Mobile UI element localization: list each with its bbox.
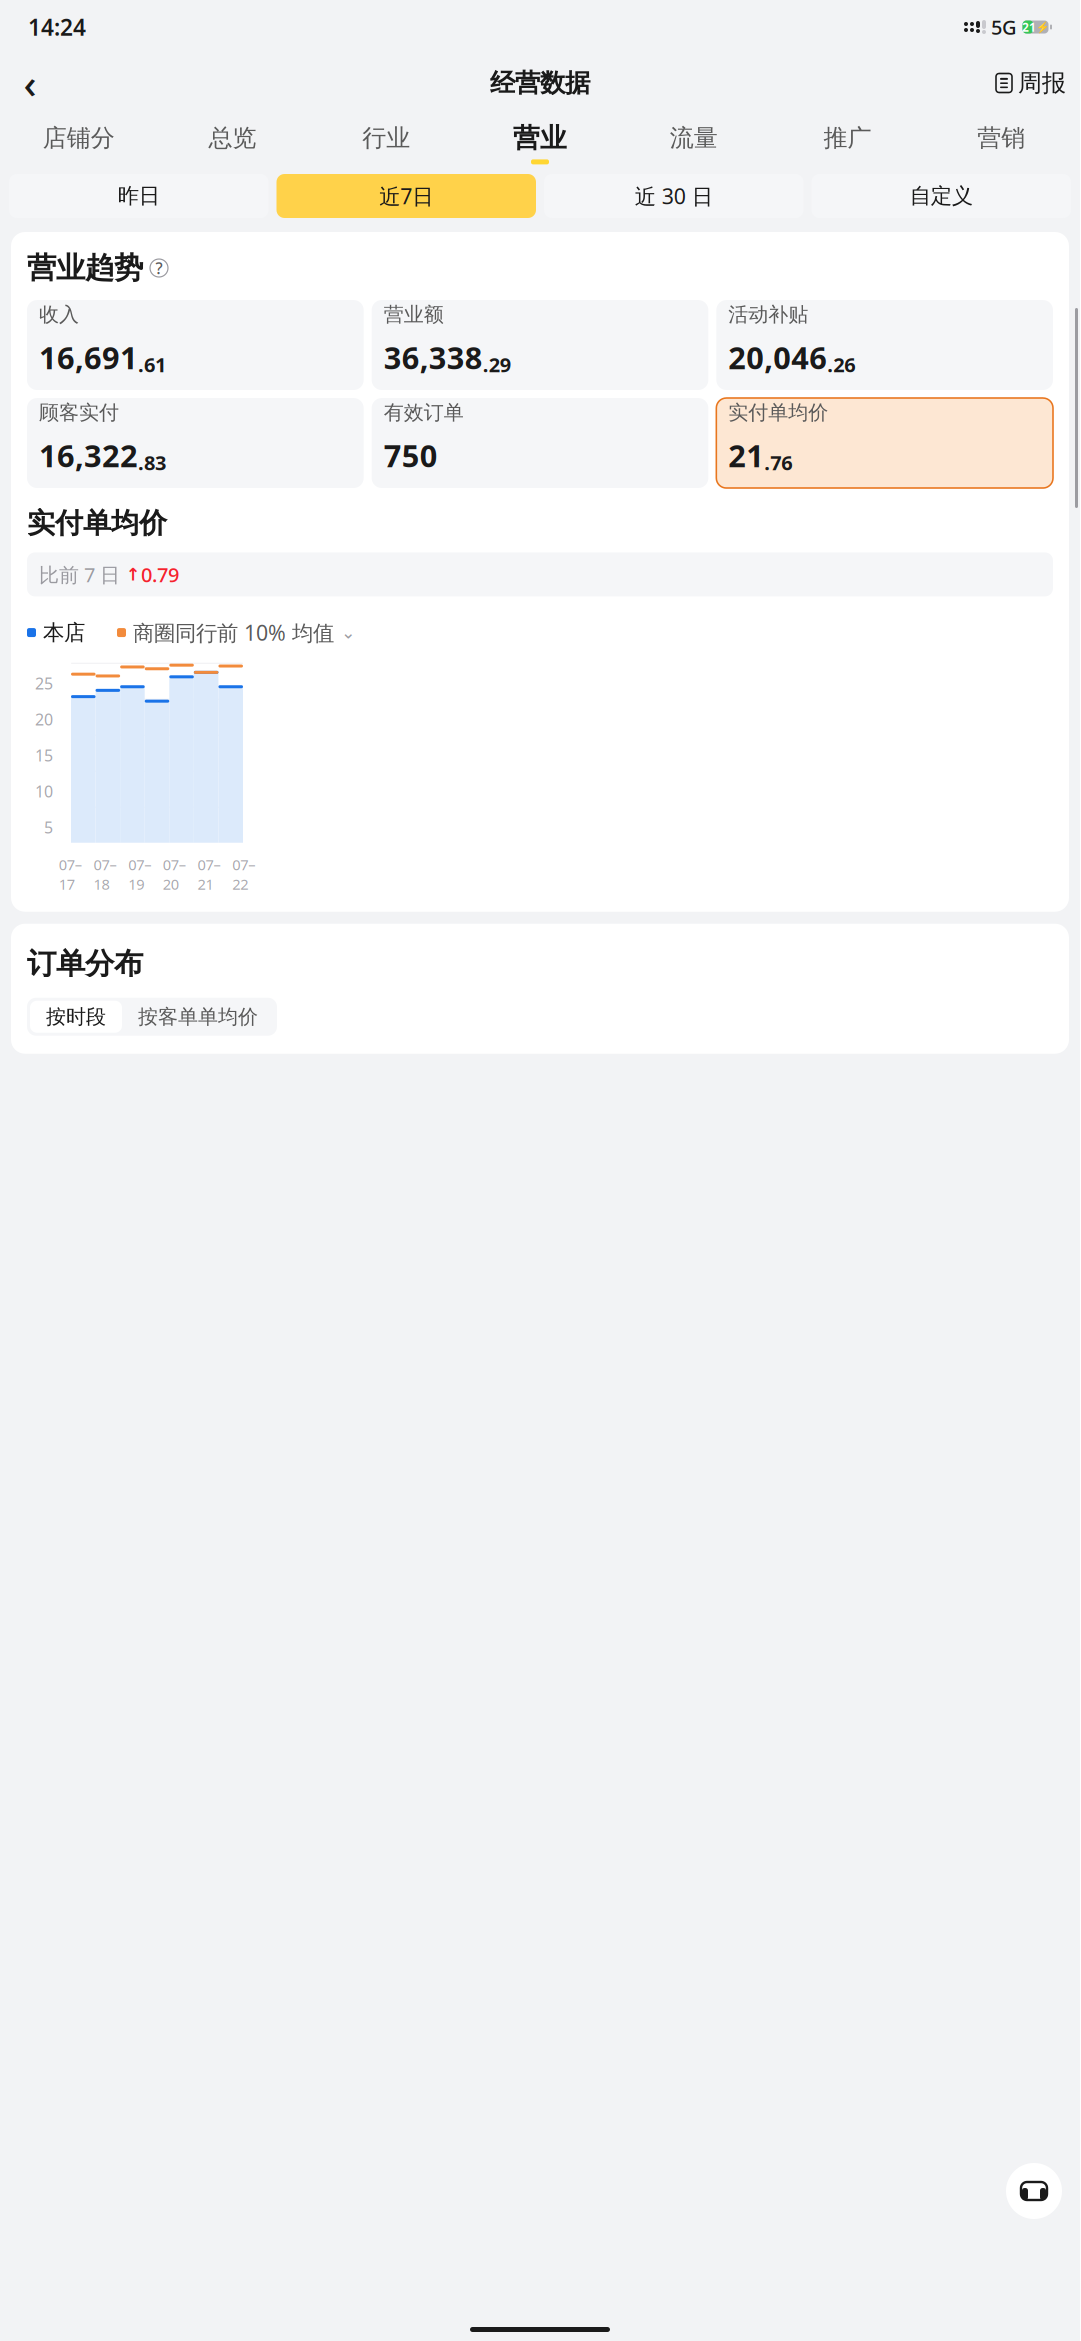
staticText: ⚡ [1036,21,1049,33]
button[interactable]: 近 30 日 [544,174,803,218]
button[interactable]: 昨日 [9,174,268,218]
staticText: 收入 [39,302,79,327]
button[interactable]: 实付单均价 [716,398,1053,488]
button[interactable]: 近7日 [276,174,536,218]
staticText: 经营数据 [490,67,590,98]
staticText: 订单分布 [27,946,143,982]
staticText: 36,338 [384,337,483,378]
staticText: 商圈同行前 10% 均值 [133,618,334,647]
staticText: 25 [35,673,53,694]
staticText: .83 [138,449,166,476]
button[interactable]: 营业 [463,114,617,172]
staticText: 昨日 [118,183,160,209]
staticText: 20 [35,709,53,730]
staticText: 周报 [1018,68,1066,98]
staticText: .26 [827,351,855,378]
staticText: 店铺分 [43,123,115,153]
staticText: 15 [35,745,53,766]
button[interactable]: 自定义 [811,174,1071,218]
staticText: 有效订单 [384,400,464,425]
staticText: 16,691 [39,337,138,378]
button[interactable]: 营销 [924,115,1078,171]
button[interactable]: 顾客实付 [27,398,364,488]
staticText: ? [155,257,162,279]
staticText: 07–20 [163,855,186,894]
button[interactable]: 行业 [309,115,463,171]
staticText: .61 [138,351,166,378]
button[interactable]: 流量 [617,115,771,171]
button[interactable]: 商圈同行前 10% 均值 [126,618,356,647]
staticText: 近7日 [379,182,433,210]
staticText: 07–22 [232,855,255,894]
button[interactable]: 推广 [771,115,924,171]
button[interactable]: 收入 [27,300,364,390]
staticText: 5 [44,817,53,838]
staticText: 按客单单均价 [138,1004,258,1029]
staticText: 21 [728,435,764,476]
button[interactable]: 返回 [8,61,52,105]
staticText: .29 [483,351,511,378]
staticText: 营销 [977,123,1025,153]
button[interactable]: 按时段 [30,1001,122,1033]
staticText: 14:24 [28,12,86,42]
staticText: ⌄ [341,623,356,642]
staticText: 推广 [823,123,871,153]
staticText: 07–19 [128,855,151,894]
staticText: ‹ [23,56,36,109]
staticText: 21 [1022,19,1036,35]
staticText: 10 [35,781,53,802]
staticText: 近 30 日 [635,182,713,210]
button[interactable]: 店铺分 [2,115,156,171]
staticText: 5G [991,14,1017,40]
staticText: 顾客实付 [39,400,119,425]
staticText: .76 [764,449,792,476]
staticText: 活动补贴 [728,302,808,327]
staticText: 07–21 [197,855,220,894]
button[interactable]: 有效订单 [372,398,708,488]
button[interactable]: 总览 [156,115,309,171]
staticText: 750 [384,435,438,476]
staticText: 营业趋势 [27,250,143,286]
staticText: 比前 7 日 [39,561,126,588]
staticText: 本店 [43,619,85,646]
staticText: 总览 [209,123,257,153]
staticText: 自定义 [910,183,973,209]
button[interactable]: 营业额 [372,300,708,390]
staticText: 流量 [670,123,718,153]
button[interactable]: 活动补贴 [716,300,1053,390]
staticText: 行业 [362,123,410,153]
staticText: 20,046 [728,337,827,378]
staticText: 实付单均价 [728,400,828,425]
staticText: 按时段 [46,1004,106,1029]
button[interactable]: 联系客服 [1006,2163,1062,2219]
staticText: 0.79 [141,561,179,588]
staticText: 营业额 [384,302,444,327]
staticText: 营业 [513,122,567,154]
button[interactable]: 按客单单均价 [122,1001,274,1033]
staticText: 实付单均价 [27,506,167,540]
staticText: ↑ [126,565,141,584]
button[interactable]: 说明 [150,259,168,277]
staticText: 07–17 [59,855,82,894]
button[interactable]: 周报 [990,61,1072,105]
staticText: 07–18 [93,855,116,894]
staticText: 16,322 [39,435,138,476]
